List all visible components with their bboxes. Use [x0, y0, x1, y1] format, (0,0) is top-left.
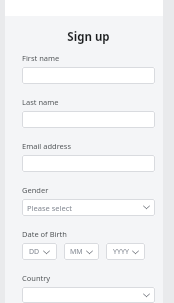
staticText: Gender — [22, 185, 49, 195]
button[interactable]: YYYY — [106, 243, 145, 260]
staticText: Please select — [27, 203, 72, 213]
button[interactable]: DD — [22, 243, 57, 260]
staticText: YYYY — [113, 247, 129, 257]
staticText: Email address — [22, 141, 72, 151]
button[interactable] — [22, 67, 155, 84]
staticText: Last name — [22, 97, 59, 107]
button[interactable] — [22, 111, 155, 128]
staticText: Date of Birth — [22, 229, 67, 239]
button[interactable] — [22, 155, 155, 172]
button[interactable] — [22, 287, 155, 303]
button[interactable]: Please select — [22, 199, 155, 216]
staticText: DD — [29, 247, 40, 257]
staticText: First name — [22, 53, 60, 63]
staticText: Sign up — [22, 29, 155, 45]
button[interactable]: MM — [64, 243, 99, 260]
staticText: MM — [70, 247, 83, 257]
staticText: Country — [22, 273, 51, 283]
